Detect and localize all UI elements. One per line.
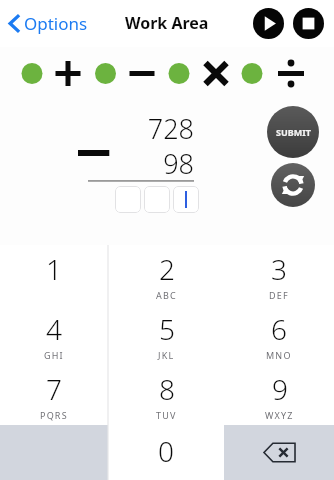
button[interactable]: 0: [108, 425, 224, 480]
button[interactable]: 8: [108, 365, 224, 425]
staticText: 2: [159, 250, 175, 288]
button[interactable]: SUBMIT: [267, 106, 319, 158]
button[interactable]: 1: [0, 245, 108, 305]
button[interactable]: Play: [253, 8, 284, 39]
staticText: GHI: [44, 349, 64, 361]
staticText: TUV: [156, 409, 177, 421]
staticText: 8: [159, 370, 175, 408]
staticText: Options: [24, 12, 88, 35]
staticText: 6: [271, 310, 287, 348]
button[interactable]: Options: [6, 6, 91, 41]
staticText: ABC: [156, 289, 177, 301]
staticText: 3: [271, 250, 287, 288]
button[interactable]: 6: [224, 305, 334, 365]
staticText: 5: [159, 310, 175, 348]
staticText: 7: [46, 370, 62, 408]
button[interactable]: 4: [0, 305, 108, 365]
staticText: 98: [146, 145, 194, 182]
staticText: PQRS: [40, 409, 68, 421]
button[interactable]: [144, 186, 170, 213]
staticText: Work Area: [125, 12, 209, 34]
staticText: JKL: [158, 349, 175, 361]
staticText: 1: [46, 250, 62, 288]
staticText: SUBMIT: [276, 126, 311, 138]
button[interactable]: 7: [0, 365, 108, 425]
button[interactable]: Stop: [293, 8, 324, 39]
button[interactable]: Backspace: [224, 425, 334, 480]
button[interactable]: [115, 186, 141, 213]
staticText: 728: [146, 110, 194, 147]
staticText: WXYZ: [265, 409, 294, 421]
staticText: 4: [46, 310, 62, 348]
button[interactable]: 2: [108, 245, 224, 305]
staticText: DEF: [269, 289, 289, 301]
button[interactable]: 9: [224, 365, 334, 425]
staticText: 9: [272, 370, 288, 408]
staticText: MNO: [266, 349, 292, 361]
staticText: 0: [158, 432, 174, 470]
button[interactable]: 5: [108, 305, 224, 365]
button[interactable]: 3: [224, 245, 334, 305]
button[interactable]: Refresh: [271, 163, 315, 207]
button[interactable]: [173, 186, 199, 213]
